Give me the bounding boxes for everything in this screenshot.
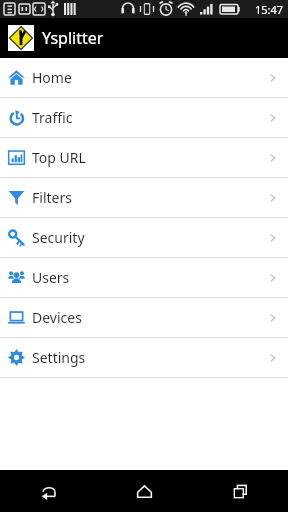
button[interactable]: Security (0, 218, 288, 257)
button[interactable]: Back (0, 470, 96, 512)
staticText: Home (32, 68, 72, 87)
button[interactable]: Top URL (0, 138, 288, 177)
staticText: Settings (32, 348, 86, 367)
staticText: 15:47 (255, 2, 284, 17)
button[interactable]: Home (0, 58, 288, 97)
staticText: Devices (32, 308, 82, 327)
button[interactable]: Filters (0, 178, 288, 217)
staticText: Ysplitter (42, 27, 104, 49)
button[interactable]: Recents (192, 470, 288, 512)
staticText: Filters (32, 188, 72, 207)
button[interactable]: Home (96, 470, 192, 512)
button[interactable]: Devices (0, 298, 288, 337)
staticText: Traffic (32, 108, 73, 127)
staticText: Top URL (32, 148, 86, 167)
staticText: Users (32, 268, 70, 287)
button[interactable]: Ysplitter logo (8, 25, 34, 51)
button[interactable]: Settings (0, 338, 288, 377)
button[interactable]: Traffic (0, 98, 288, 137)
staticText: Security (32, 228, 85, 247)
button[interactable]: Users (0, 258, 288, 297)
